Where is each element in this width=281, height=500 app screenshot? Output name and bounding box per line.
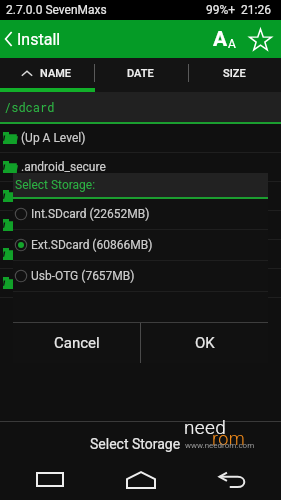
button[interactable]: Cancel: [13, 323, 140, 363]
staticText: Alarms: [21, 189, 60, 203]
staticText: 2.7.0.0 SevenMaxs: [6, 3, 107, 17]
staticText: Select Storage: [90, 436, 181, 452]
staticText: 99%+ 21:26: [206, 3, 271, 17]
staticText: NAME: [40, 67, 72, 80]
button[interactable]: Favorite: [242, 20, 278, 58]
button[interactable]: NAME: [0, 58, 93, 88]
staticText: OK: [195, 334, 215, 352]
button[interactable]: DATE: [93, 58, 187, 88]
staticText: DCIM: [21, 276, 51, 290]
button[interactable]: Home: [117, 459, 165, 500]
button[interactable]: Android: [0, 211, 281, 239]
button[interactable]: Text size: [206, 20, 242, 58]
button[interactable]: OK: [141, 323, 268, 363]
button[interactable]: .android_secure: [0, 153, 281, 181]
button[interactable]: Recent apps: [26, 459, 74, 500]
staticText: (Up A Level): [21, 131, 86, 145]
button[interactable]: Install: [0, 20, 69, 58]
staticText: Usb-OTG (7657MB): [31, 269, 135, 283]
button[interactable]: Int.SDcard (22652MB): [13, 199, 268, 229]
staticText: A: [228, 37, 236, 51]
staticText: Android: [21, 218, 63, 232]
staticText: www.needrom.com: [185, 441, 255, 450]
staticText: Ext.SDcard (60866MB): [31, 238, 153, 252]
staticText: Int.SDcard (22652MB): [31, 207, 150, 221]
button[interactable]: SIZE: [187, 58, 281, 88]
staticText: .android_secure: [21, 160, 106, 174]
staticText: need: [184, 416, 227, 438]
button[interactable]: Ext.SDcard (60866MB): [13, 230, 268, 260]
button[interactable]: Back: [208, 459, 256, 500]
staticText: Select Storage:: [15, 178, 96, 192]
button[interactable]: Alarms: [0, 182, 281, 210]
staticText: Cancel: [54, 334, 100, 352]
staticText: DATE: [127, 67, 154, 80]
button[interactable]: DCIM: [0, 269, 281, 297]
staticText: A: [213, 27, 228, 52]
staticText: Install: [17, 30, 61, 49]
staticText: backups: [21, 247, 67, 261]
button[interactable]: backups: [0, 240, 281, 268]
button[interactable]: Usb-OTG (7657MB): [13, 261, 268, 291]
staticText: SIZE: [223, 67, 246, 80]
button[interactable]: (Up A Level): [0, 124, 281, 152]
staticText: rom: [212, 428, 246, 449]
staticText: /sdcard: [4, 99, 55, 115]
